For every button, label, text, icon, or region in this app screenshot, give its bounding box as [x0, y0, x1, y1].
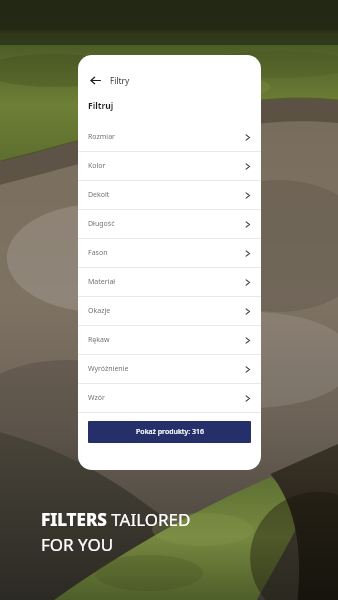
staticText: Wzór: [88, 393, 105, 403]
button[interactable]: Pokaż produkty: 316: [88, 421, 251, 443]
button[interactable]: Dekolt: [78, 181, 261, 209]
staticText: Wyróżnienie: [88, 364, 129, 374]
button[interactable]: Wzór: [78, 384, 261, 412]
staticText: Fason: [88, 248, 108, 258]
button[interactable]: Długość: [78, 210, 261, 238]
button[interactable]: Rękaw: [78, 326, 261, 354]
staticText: Pokaż produkty: 316: [136, 427, 204, 437]
staticText: Rękaw: [88, 335, 110, 345]
button[interactable]: Wyróżnienie: [78, 355, 261, 383]
staticText: Kolor: [88, 161, 106, 171]
staticText: Rozmiar: [88, 132, 115, 142]
staticText: Filtruj: [88, 100, 114, 112]
staticText: Dekolt: [88, 190, 110, 200]
staticText: FOR YOU: [41, 533, 114, 556]
button[interactable]: Kolor: [78, 152, 261, 180]
staticText: Filtry: [110, 75, 130, 86]
staticText: Okazje: [88, 306, 111, 316]
button[interactable]: Okazje: [78, 297, 261, 325]
button[interactable]: Back: [86, 71, 104, 89]
button[interactable]: Fason: [78, 239, 261, 267]
staticText: FILTERS TAILORED: [41, 508, 191, 531]
button[interactable]: Rozmiar: [78, 123, 261, 151]
staticText: Długość: [88, 219, 115, 229]
button[interactable]: Materiał: [78, 268, 261, 296]
staticText: Materiał: [88, 277, 116, 287]
